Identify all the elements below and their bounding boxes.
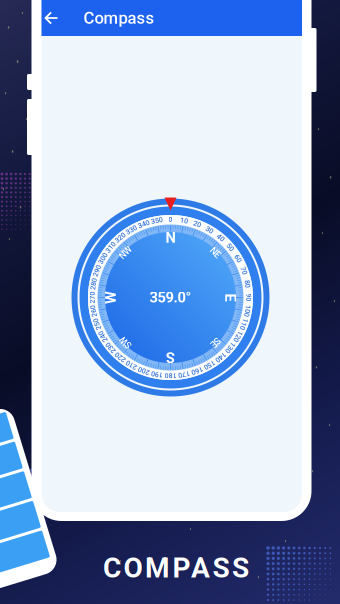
staticText: 290: [91, 267, 103, 275]
staticText: W: [104, 289, 117, 306]
staticText: 330: [125, 226, 137, 234]
staticText: 20: [193, 220, 201, 228]
button[interactable]: Back: [41, 0, 65, 36]
staticText: 240: [97, 333, 109, 340]
staticText: 270: [86, 294, 98, 301]
staticText: 340: [138, 220, 150, 228]
staticText: 250: [91, 320, 103, 328]
staticText: SW: [119, 337, 132, 347]
staticText: SE: [210, 337, 220, 347]
staticText: E: [226, 289, 234, 306]
staticText: 40: [217, 234, 225, 242]
staticText: 150: [203, 361, 215, 369]
staticText: N: [165, 229, 175, 246]
staticText: 320: [114, 234, 126, 242]
staticText: 100: [241, 307, 253, 315]
staticText: 300: [97, 255, 109, 262]
staticText: 220: [114, 353, 126, 361]
staticText: COMPASS: [103, 552, 249, 584]
staticText: 0: [168, 216, 172, 223]
staticText: 140: [215, 353, 227, 361]
staticText: 30: [205, 226, 213, 234]
staticText: 10: [180, 217, 188, 225]
staticText: 310: [105, 243, 117, 251]
staticText: NW: [119, 248, 133, 258]
staticText: 170: [178, 370, 190, 378]
staticText: 210: [125, 361, 137, 369]
staticText: Compass: [83, 8, 154, 28]
staticText: NE: [210, 248, 221, 258]
staticText: S: [166, 349, 175, 366]
staticText: 260: [88, 307, 100, 315]
staticText: 80: [243, 280, 251, 288]
staticText: 70: [240, 267, 248, 275]
staticText: 160: [191, 367, 203, 375]
staticText: 359.0°: [149, 289, 191, 306]
staticText: 230: [105, 344, 117, 351]
staticText: 350: [151, 217, 163, 225]
staticText: 200: [138, 367, 150, 375]
staticText: 180: [164, 372, 176, 379]
staticText: 110: [238, 320, 250, 328]
staticText: 90: [244, 294, 252, 301]
staticText: 280: [88, 280, 100, 288]
staticText: 60: [234, 255, 242, 262]
staticText: 190: [151, 370, 163, 378]
staticText: 120: [232, 333, 244, 340]
staticText: 130: [224, 344, 236, 351]
staticText: 50: [226, 243, 234, 251]
